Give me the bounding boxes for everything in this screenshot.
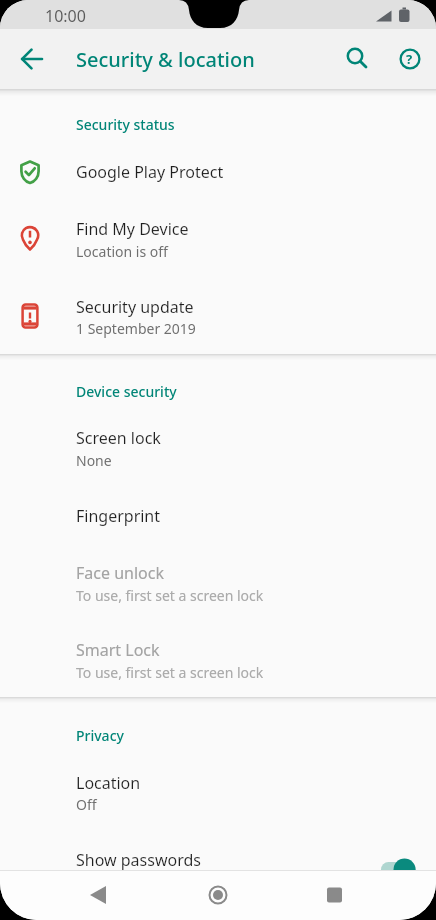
staticText: Privacy bbox=[76, 726, 124, 745]
staticText: Fingerprint bbox=[76, 505, 161, 527]
staticText: Off bbox=[76, 795, 97, 814]
staticText: Device security bbox=[76, 382, 177, 401]
staticText: Show passwords bbox=[76, 849, 201, 871]
staticText: Smart Lock bbox=[76, 639, 160, 661]
staticText: 10:00 bbox=[45, 5, 86, 27]
staticText: Security update bbox=[76, 296, 194, 318]
staticText: Find My Device bbox=[76, 218, 189, 240]
staticText: Location bbox=[76, 772, 141, 794]
staticText: Location is off bbox=[76, 242, 168, 261]
staticText: Security status bbox=[76, 115, 175, 134]
staticText: To use, first set a screen lock bbox=[76, 663, 264, 682]
staticText: Security & location bbox=[76, 46, 255, 73]
staticText: 1 September 2019 bbox=[76, 319, 196, 338]
staticText: Screen lock bbox=[76, 427, 161, 449]
staticText: Face unlock bbox=[76, 562, 164, 584]
staticText: To use, first set a screen lock bbox=[76, 586, 264, 605]
staticText: None bbox=[76, 451, 112, 470]
staticText: Google Play Protect bbox=[76, 161, 224, 183]
staticText: ? bbox=[406, 50, 413, 68]
